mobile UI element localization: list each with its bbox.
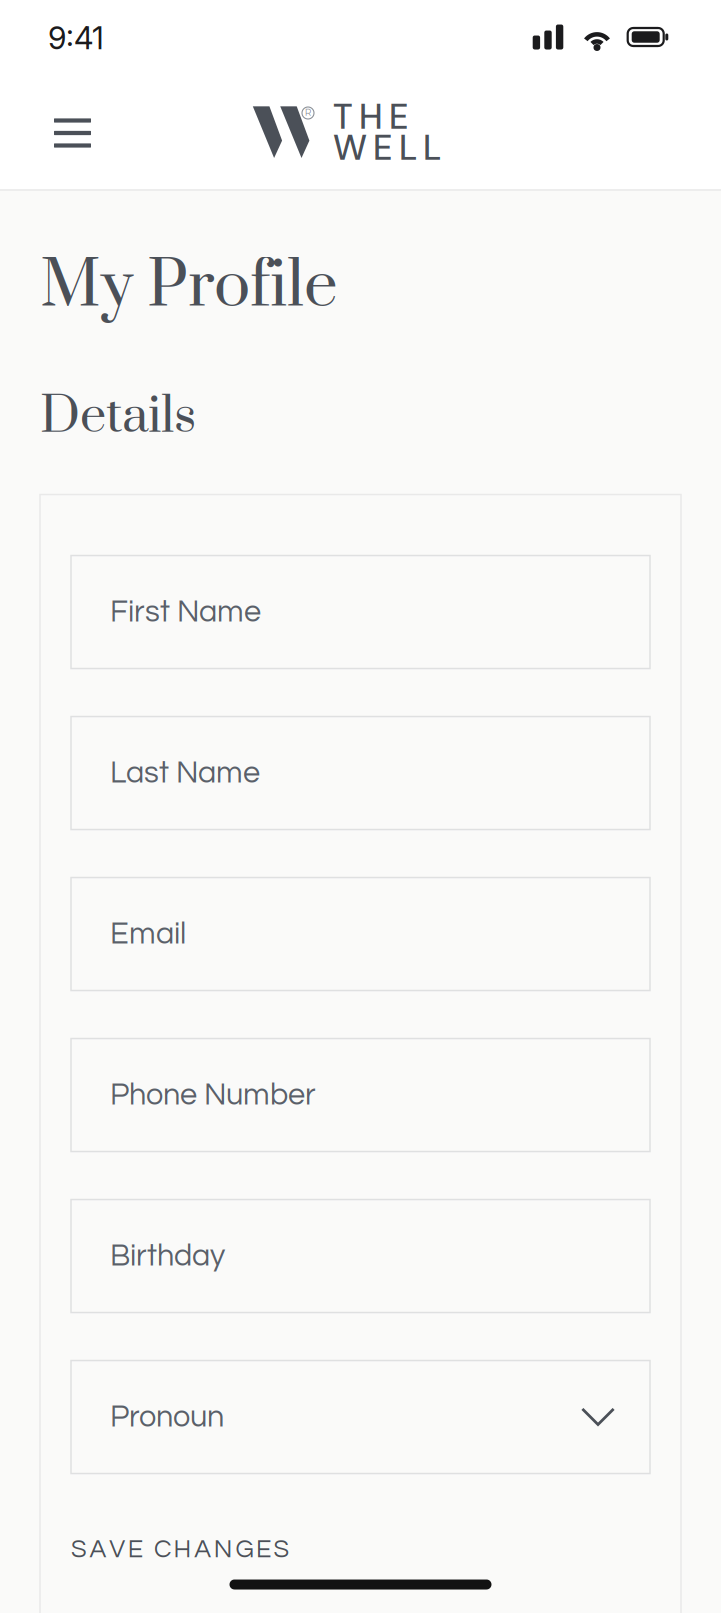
staticText: Pronoun xyxy=(110,1401,224,1433)
staticText: E xyxy=(128,1536,143,1563)
staticText: First Name xyxy=(110,596,261,628)
staticText: G xyxy=(235,1536,253,1563)
staticText: L xyxy=(399,125,417,170)
staticText: Phone Number xyxy=(110,1079,316,1111)
staticText: H xyxy=(359,94,383,139)
staticText: V xyxy=(109,1536,125,1563)
staticText: W xyxy=(333,125,367,170)
staticText: S xyxy=(274,1536,290,1563)
staticText: Email xyxy=(110,918,186,950)
staticText: My Profile xyxy=(40,246,338,327)
button[interactable]: Email xyxy=(71,877,650,990)
button[interactable]: S xyxy=(71,1521,650,1564)
staticText: 9:41 xyxy=(48,19,104,56)
staticText: T xyxy=(333,94,353,139)
staticText: A xyxy=(90,1536,107,1563)
button[interactable]: Pronoun xyxy=(71,1360,650,1473)
staticText: Last Name xyxy=(110,757,260,789)
staticText: A xyxy=(194,1536,211,1563)
button[interactable]: Last Name xyxy=(71,716,650,829)
button[interactable]: Phone Number xyxy=(71,1038,650,1151)
staticText: L xyxy=(423,125,441,170)
staticText: E xyxy=(389,94,409,139)
staticText: E xyxy=(373,125,393,170)
staticText: E xyxy=(256,1536,271,1563)
staticText: C xyxy=(154,1536,171,1563)
staticText: Birthday xyxy=(110,1240,225,1272)
staticText: Details xyxy=(40,385,196,448)
staticText: H xyxy=(174,1536,192,1563)
staticText: N xyxy=(214,1536,233,1563)
button[interactable]: The Well home xyxy=(0,0,721,191)
staticText: R xyxy=(305,108,311,118)
button[interactable]: Birthday xyxy=(71,1199,650,1312)
button[interactable]: First Name xyxy=(71,555,650,668)
staticText: S xyxy=(71,1536,87,1563)
button[interactable]: Menu xyxy=(39,100,105,166)
